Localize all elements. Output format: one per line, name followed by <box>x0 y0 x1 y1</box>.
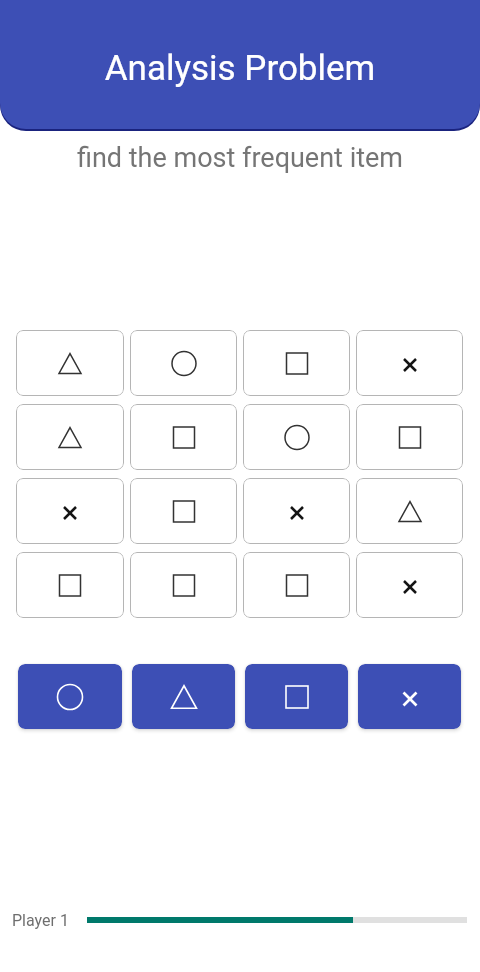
button[interactable]: answer square <box>245 664 348 729</box>
button[interactable]: answer cross <box>358 664 461 729</box>
button[interactable]: square <box>130 404 237 470</box>
button[interactable]: circle <box>130 330 237 396</box>
staticText: Analysis Problem <box>0 48 480 89</box>
button[interactable]: cross <box>243 478 350 544</box>
staticText: find the most frequent item <box>0 142 480 174</box>
button[interactable]: square <box>356 404 463 470</box>
button[interactable]: answer triangle <box>132 664 235 729</box>
button[interactable]: square <box>130 552 237 618</box>
button[interactable]: circle <box>243 404 350 470</box>
button[interactable]: square <box>243 552 350 618</box>
button[interactable]: square <box>16 552 124 618</box>
staticText: Player 1 <box>12 911 69 930</box>
button[interactable]: cross <box>356 330 463 396</box>
button[interactable]: cross <box>356 552 463 618</box>
button[interactable]: triangle <box>356 478 463 544</box>
button[interactable]: triangle <box>16 330 124 396</box>
button[interactable]: answer circle <box>18 664 122 729</box>
button[interactable]: square <box>130 478 237 544</box>
button[interactable]: cross <box>16 478 124 544</box>
button[interactable]: square <box>243 330 350 396</box>
button[interactable]: triangle <box>16 404 124 470</box>
